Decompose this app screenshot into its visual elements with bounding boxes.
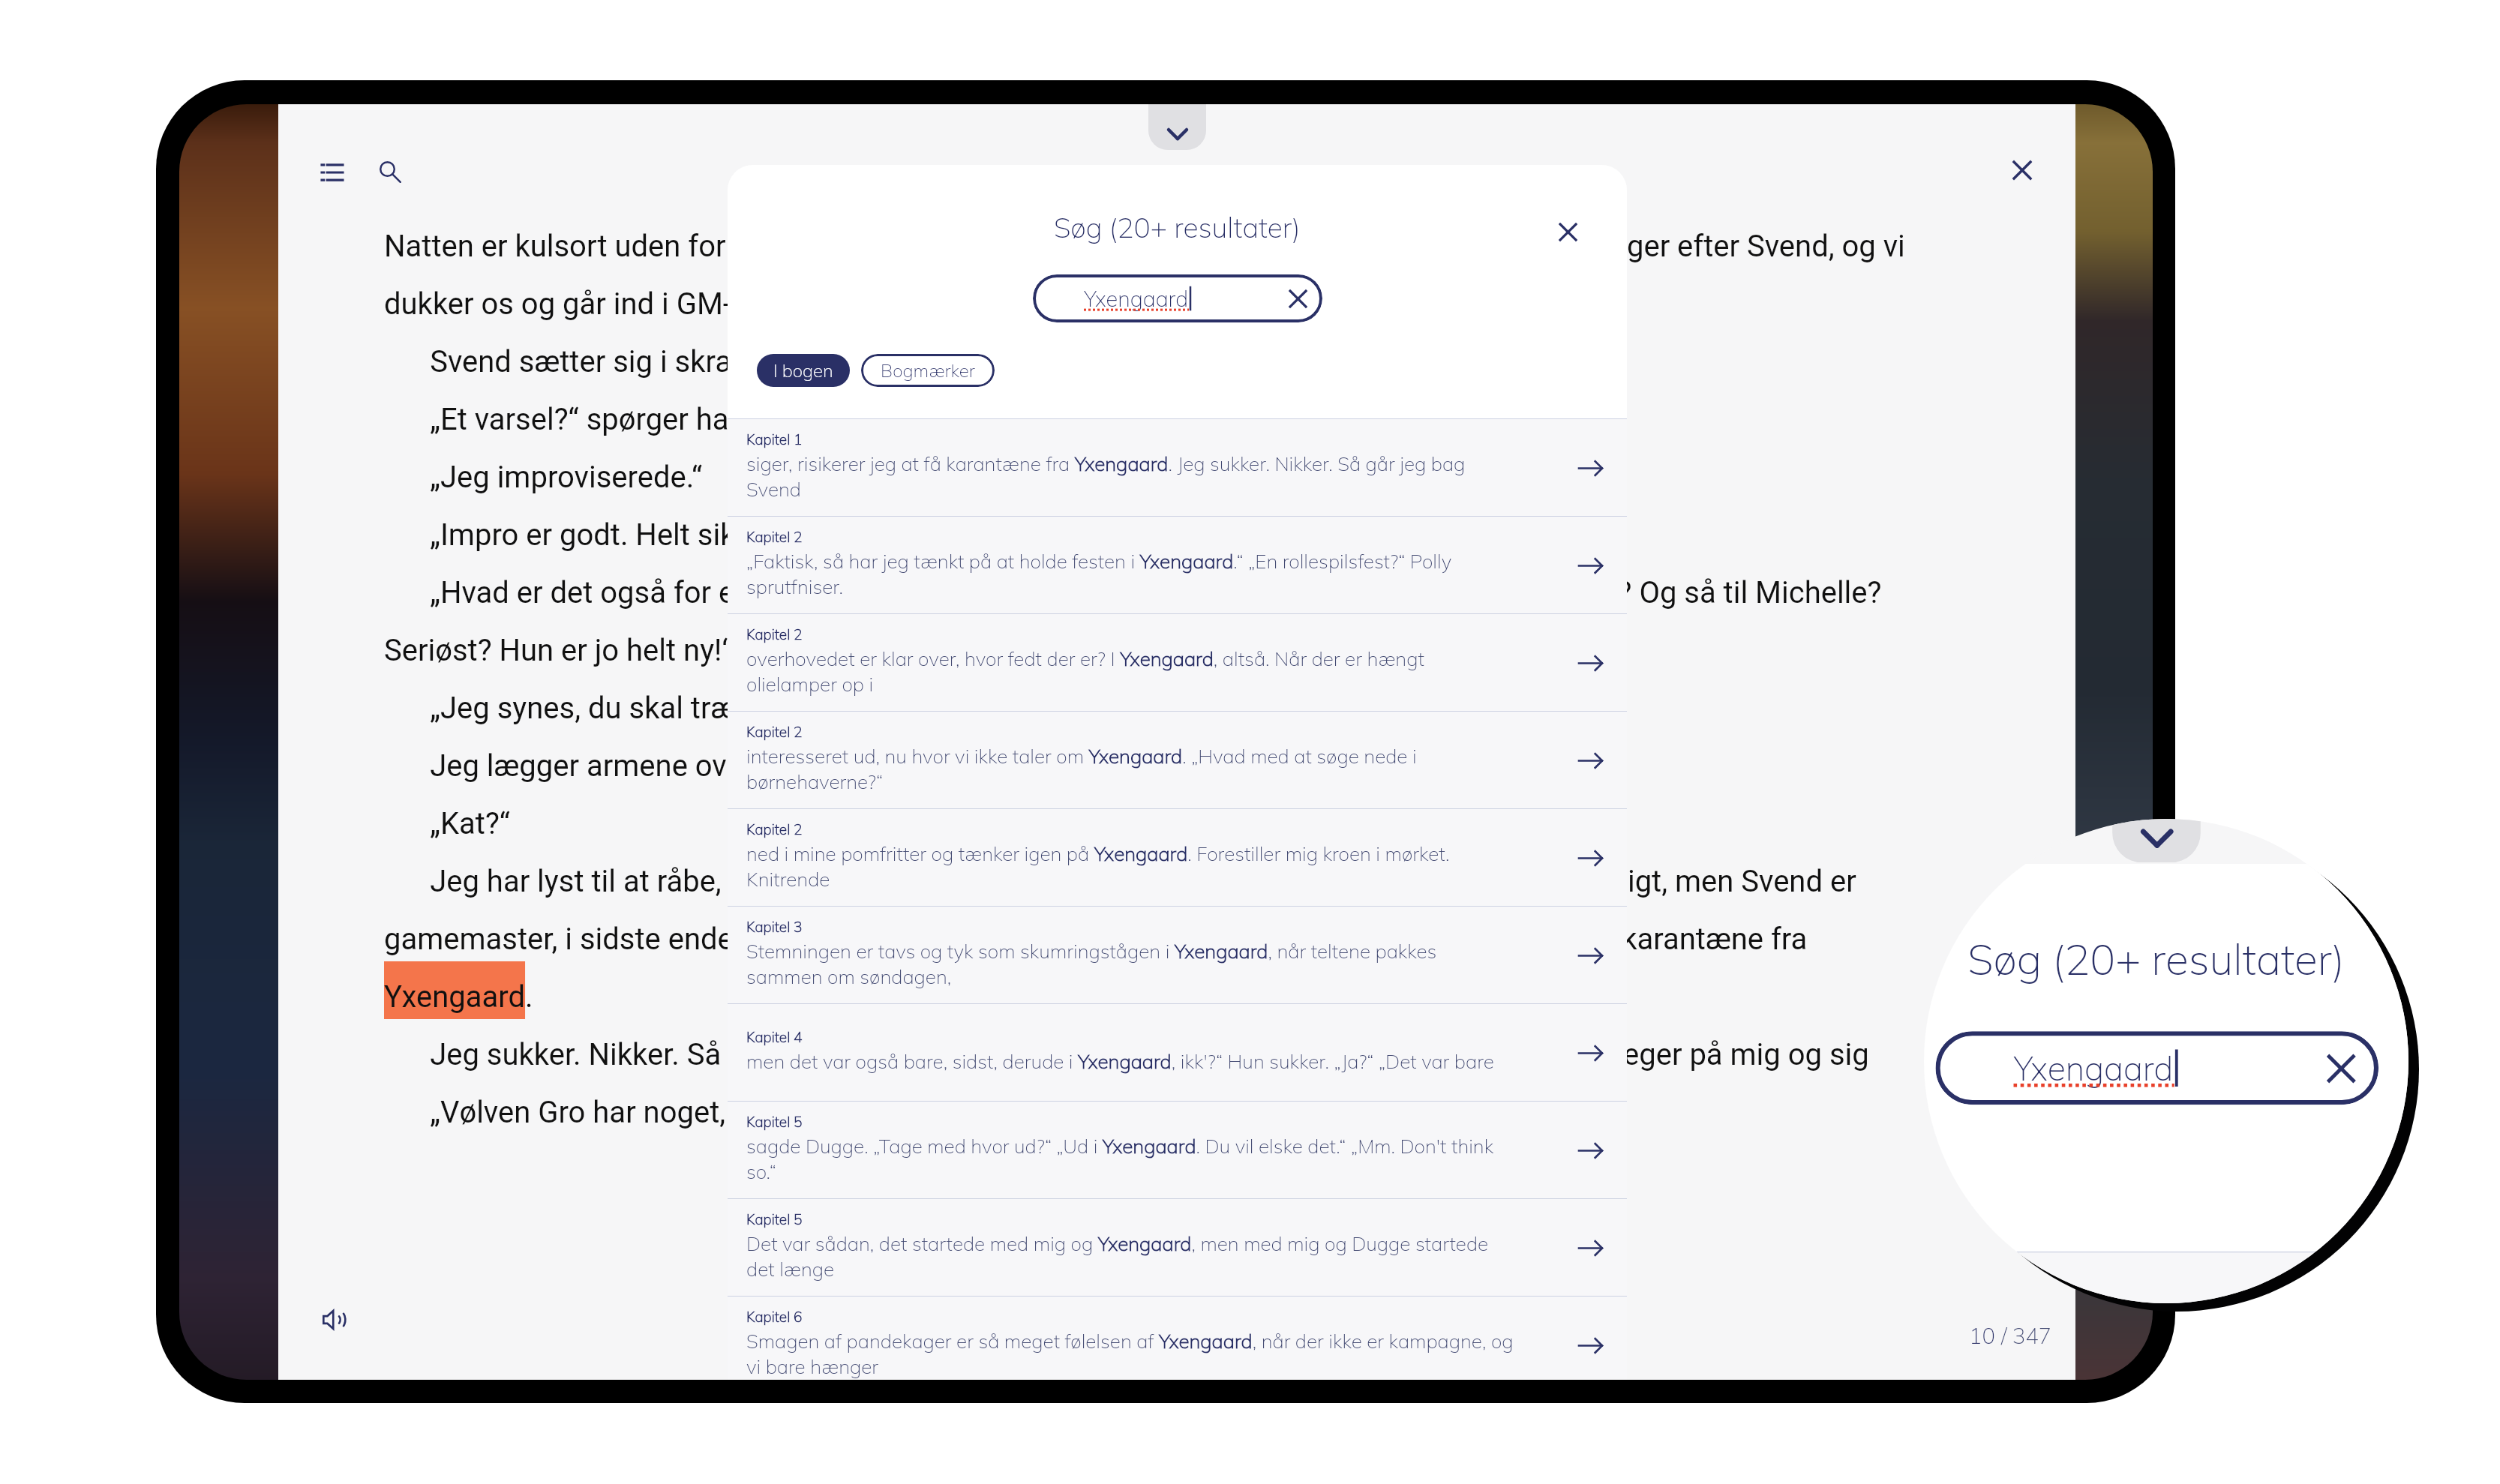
button[interactable]: Collapse panel <box>1148 104 1206 150</box>
button[interactable]: Kapitel 3 <box>728 907 1627 1004</box>
staticText: overhovedet er klar over, hvor fedt der … <box>746 646 1514 697</box>
button[interactable]: Kapitel 2 <box>728 809 1627 907</box>
staticText: Kapitel 4 <box>746 1028 803 1046</box>
staticText: Yxengaard <box>1084 285 1189 312</box>
button[interactable]: Table of contents <box>315 155 350 190</box>
staticText: Kapitel 2 <box>746 625 803 643</box>
staticText: Kapitel 1 <box>746 430 803 448</box>
staticText: ned i mine pomfritter og tænker igen på … <box>746 841 1514 892</box>
button[interactable]: Kapitel 6 <box>728 1297 1627 1380</box>
button[interactable]: Yxengaard <box>1033 274 1322 322</box>
staticText: sagde Dugge. „Tage med hvor ud?“ „Ud i Y… <box>746 1134 1514 1184</box>
other: Go to Kapitel 1 <box>1579 457 1602 480</box>
button[interactable]: Kapitel 1 <box>728 419 1627 517</box>
other: Go to Kapitel 5 <box>1579 1237 1602 1260</box>
staticText: Bogmærker <box>881 359 975 382</box>
staticText: Kapitel 2 <box>746 820 803 838</box>
staticText: Kapitel 5 <box>746 1210 803 1228</box>
button[interactable]: Kapitel 4 <box>728 1004 1627 1102</box>
button[interactable]: Kapitel 2 <box>728 517 1627 614</box>
button[interactable]: Kapitel 5 <box>728 1199 1627 1297</box>
other: Go to Kapitel 5 <box>1579 1139 1602 1162</box>
button[interactable]: Bogmærker <box>861 354 995 387</box>
button[interactable]: Kapitel 2 <box>728 614 1627 712</box>
staticText: Natten er kulsort uden for kroen, og der… <box>384 229 2153 1130</box>
staticText: Kapitel 2 <box>746 528 803 546</box>
other: Go to Kapitel 2 <box>1579 749 1602 772</box>
staticText: men det var også bare, sidst, derude i Y… <box>746 1049 1494 1074</box>
button[interactable]: I bogen <box>757 354 850 387</box>
other: Go to Kapitel 2 <box>1579 554 1602 577</box>
staticText: Kapitel 3 <box>746 918 803 936</box>
staticText: I bogen <box>773 359 833 382</box>
other: Go to Kapitel 4 <box>1579 1042 1602 1065</box>
other: Go to Kapitel 3 <box>1579 944 1602 967</box>
staticText: interesseret ud, nu hvor vi ikke taler o… <box>746 744 1514 794</box>
staticText: Smagen af pandekager er så meget følelse… <box>746 1329 1514 1379</box>
staticText: Kapitel 6 <box>746 1308 803 1326</box>
staticText: Søg (20+ resultater) <box>1054 210 1301 244</box>
button[interactable]: Yxengaard <box>1936 1031 2379 1105</box>
staticText: „Faktisk, så har jeg tænkt på at holde f… <box>746 549 1514 599</box>
staticText: Det var sådan, det startede med mig og Y… <box>746 1231 1514 1282</box>
staticText: Søg (20+ resultater) <box>1968 933 2345 985</box>
staticText: Kapitel 5 <box>746 1113 803 1131</box>
staticText: Stemningen er tavs og tyk som skumringst… <box>746 939 1514 989</box>
button[interactable]: Search <box>373 154 407 189</box>
other: Go to Kapitel 2 <box>1579 652 1602 675</box>
staticText: siger, risikerer jeg at få karantæne fra… <box>746 451 1514 502</box>
button[interactable]: Kapitel 5 <box>728 1102 1627 1199</box>
staticText: Yxengaard <box>2014 1047 2174 1089</box>
other: Go to Kapitel 2 <box>1579 847 1602 870</box>
button[interactable]: Read aloud <box>317 1303 351 1337</box>
button[interactable]: Kapitel 2 <box>728 712 1627 809</box>
staticText: 10 <box>1969 1322 2001 1349</box>
staticText: / 347 <box>2001 1322 2051 1349</box>
staticText: Kapitel 2 <box>746 723 803 741</box>
other: Go to Kapitel 6 <box>1579 1334 1602 1357</box>
button[interactable]: Close reader <box>2005 153 2039 187</box>
button[interactable]: Close search <box>1555 219 1580 244</box>
